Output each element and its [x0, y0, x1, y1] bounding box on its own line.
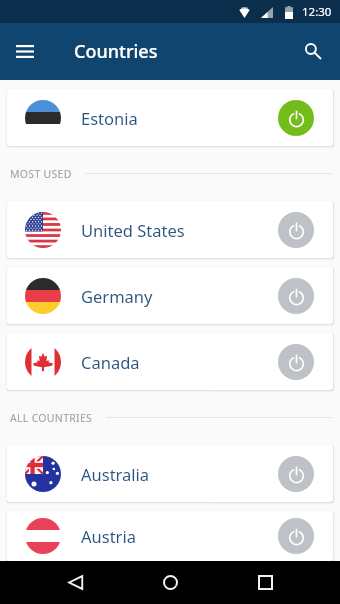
button[interactable]: Menu: [4, 31, 45, 72]
staticText: Austria: [81, 525, 136, 547]
button[interactable]: Connect: [278, 456, 314, 492]
staticText: United States: [81, 219, 185, 241]
staticText: Germany: [81, 285, 153, 307]
button[interactable]: Connect: [278, 212, 314, 248]
button[interactable]: Canada: [7, 333, 333, 390]
button[interactable]: Connect: [278, 278, 314, 314]
button[interactable]: Home: [148, 561, 193, 604]
staticText: ALL COUNTRIES: [10, 411, 93, 425]
button[interactable]: Back: [53, 561, 98, 604]
button[interactable]: Australia: [7, 445, 333, 502]
staticText: 12:30: [302, 4, 332, 20]
button[interactable]: Connect: [278, 518, 314, 554]
staticText: Australia: [81, 463, 150, 485]
staticText: MOST USED: [10, 167, 72, 181]
staticText: Countries: [74, 39, 158, 64]
button[interactable]: Germany: [7, 267, 333, 324]
staticText: Estonia: [81, 107, 138, 129]
button[interactable]: Austria: [7, 511, 333, 561]
button[interactable]: Disconnect: [278, 100, 314, 136]
button[interactable]: Recents: [243, 561, 288, 604]
button[interactable]: Estonia: [7, 89, 333, 146]
button[interactable]: Connect: [278, 344, 314, 380]
button[interactable]: Search: [293, 31, 334, 72]
button[interactable]: United States: [7, 201, 333, 258]
staticText: Canada: [81, 351, 140, 373]
